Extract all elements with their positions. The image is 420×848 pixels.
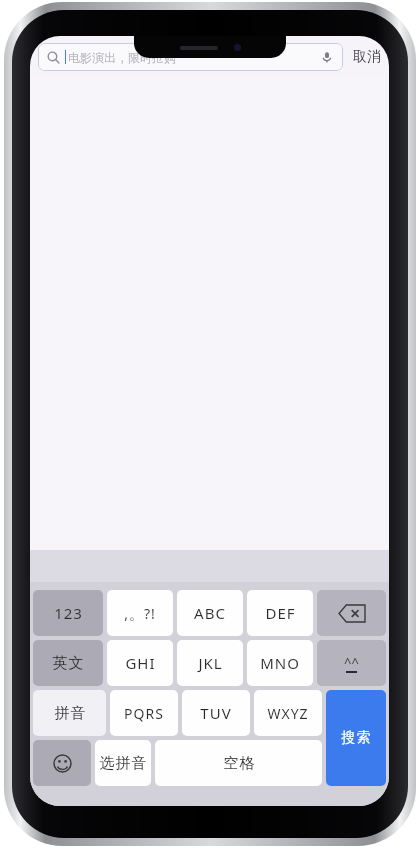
button[interactable]: 电影演出，限时抢购 <box>38 43 343 71</box>
staticText: WXYZ <box>267 704 309 723</box>
button[interactable]: TUV <box>182 690 250 736</box>
staticText: GHI <box>125 653 156 673</box>
button[interactable]: 拼音 <box>33 690 106 736</box>
button[interactable]: ABC <box>177 590 243 636</box>
staticText: 英文 <box>52 654 84 673</box>
staticText: 搜索 <box>341 729 371 747</box>
staticText: JKL <box>198 653 223 673</box>
staticText: DEF <box>265 603 296 623</box>
button[interactable]: Delete <box>317 590 386 636</box>
staticText: 取消 <box>353 48 381 66</box>
staticText: ABC <box>194 603 226 623</box>
staticText: 选拼音 <box>99 754 147 773</box>
staticText: 电影演出，限时抢购 <box>68 50 176 65</box>
staticText: MNO <box>260 653 300 673</box>
button[interactable]: 123 <box>33 590 103 636</box>
button[interactable]: 空格 <box>155 740 322 786</box>
button[interactable]: 搜索 <box>326 690 386 786</box>
button[interactable]: 英文 <box>33 640 103 686</box>
button[interactable]: JKL <box>177 640 243 686</box>
staticText: 123 <box>54 603 83 623</box>
button[interactable]: ,。?! <box>107 590 173 636</box>
button[interactable]: MNO <box>247 640 313 686</box>
button[interactable]: Emoji <box>33 740 91 786</box>
button[interactable]: Emoticon <box>317 640 386 686</box>
button[interactable]: 取消 <box>353 48 381 66</box>
staticText: ^^ <box>344 653 359 671</box>
button[interactable]: GHI <box>107 640 173 686</box>
staticText: 空格 <box>223 754 255 773</box>
button[interactable]: DEF <box>247 590 313 636</box>
button[interactable]: PQRS <box>110 690 178 736</box>
button[interactable]: Voice search <box>320 50 334 64</box>
staticText: PQRS <box>124 704 164 723</box>
button[interactable]: 选拼音 <box>95 740 151 786</box>
staticText: ,。?! <box>124 604 156 623</box>
staticText: TUV <box>200 703 232 723</box>
staticText: 拼音 <box>54 704 86 723</box>
button[interactable]: WXYZ <box>254 690 322 736</box>
